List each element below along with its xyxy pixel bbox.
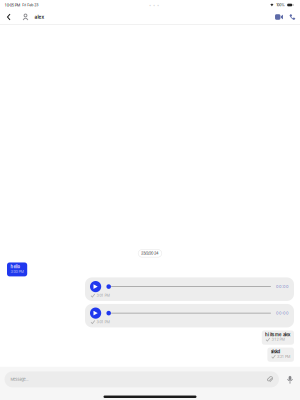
staticText: hello	[11, 264, 21, 269]
button[interactable]: hi its me alex	[262, 330, 294, 345]
button[interactable]: alskd	[267, 347, 294, 362]
staticText: 3:01 PM	[96, 293, 109, 298]
staticText: Message...	[10, 377, 28, 382]
staticText: 10:05 PM	[5, 3, 20, 7]
staticText: 23/2/2024	[141, 251, 159, 255]
staticText: alskd	[271, 349, 281, 354]
staticText: 3:01 PM	[96, 320, 109, 324]
button[interactable]: Message...	[4, 371, 279, 387]
staticText: 00:00	[276, 284, 289, 289]
staticText: alex	[35, 14, 45, 20]
staticText: 00:00	[276, 311, 289, 315]
staticText: 3:21 PM	[277, 354, 290, 359]
staticText: 100%	[276, 3, 285, 7]
staticText: 3:12 PM	[271, 337, 284, 342]
staticText: • • •	[149, 2, 160, 8]
staticText: hi its me alex	[265, 332, 290, 337]
staticText: 3:00 PM	[11, 269, 24, 274]
button[interactable]: alex	[22, 10, 45, 24]
staticText: Fri Feb 23	[22, 3, 38, 7]
button[interactable]: Call	[289, 10, 296, 24]
button[interactable]: Back	[4, 10, 14, 24]
button[interactable]: Video call	[275, 10, 283, 24]
button[interactable]: Record voice message	[284, 371, 296, 387]
